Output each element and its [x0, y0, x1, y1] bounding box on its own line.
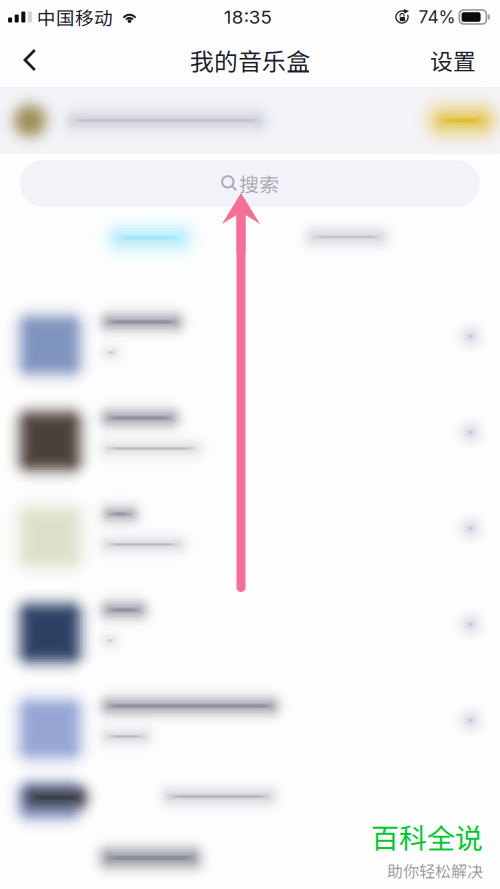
- staticText: 74%: [418, 6, 455, 27]
- button[interactable]: 歌曲: [0, 681, 500, 777]
- staticText: 中国移动: [37, 3, 113, 30]
- staticText: 我的音乐盒: [190, 43, 310, 77]
- button[interactable]: 歌曲: [0, 777, 500, 817]
- button[interactable]: 歌曲: [0, 489, 500, 585]
- staticText: 设置: [430, 44, 476, 76]
- staticText: 搜索: [239, 169, 279, 198]
- button[interactable]: 搜索: [20, 160, 480, 207]
- button[interactable]: 分类二: [0, 212, 400, 258]
- button[interactable]: 歌曲: [0, 393, 500, 489]
- button[interactable]: 返回: [7, 37, 53, 83]
- button[interactable]: 歌曲: [0, 585, 500, 681]
- staticText: 助你轻松解决: [387, 859, 483, 882]
- staticText: 百科全说: [371, 816, 483, 857]
- button[interactable]: 设置: [418, 37, 488, 83]
- button[interactable]: 分类一: [0, 201, 210, 269]
- button[interactable]: 歌曲: [0, 297, 500, 393]
- staticText: 18:35: [224, 6, 272, 28]
